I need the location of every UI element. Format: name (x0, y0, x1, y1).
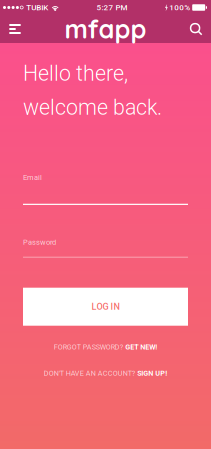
staticText: 5:27 PM (96, 3, 127, 12)
button[interactable]: DON'T HAVE AN ACCOUNT? (23, 369, 188, 377)
button[interactable]: Menu (0, 15, 30, 43)
staticText: TUBIK (26, 3, 48, 12)
staticText: DON'T HAVE AN ACCOUNT? (44, 369, 135, 377)
staticText: Email (23, 173, 42, 182)
staticText: LOG IN (91, 301, 119, 312)
staticText: Password (23, 238, 56, 247)
button[interactable]: LOG IN (23, 288, 188, 326)
staticText: SIGN UP! (137, 369, 167, 377)
staticText: FORGOT PASSWORD? (54, 343, 123, 351)
button[interactable]: FORGOT PASSWORD? (23, 343, 188, 351)
staticText: 100% (169, 3, 190, 12)
button[interactable]: Search (181, 15, 211, 43)
staticText: Hello there, (23, 61, 128, 86)
staticText: mfapp (64, 13, 146, 45)
staticText: GET NEW! (125, 343, 157, 351)
staticText: welcome back. (23, 95, 162, 120)
